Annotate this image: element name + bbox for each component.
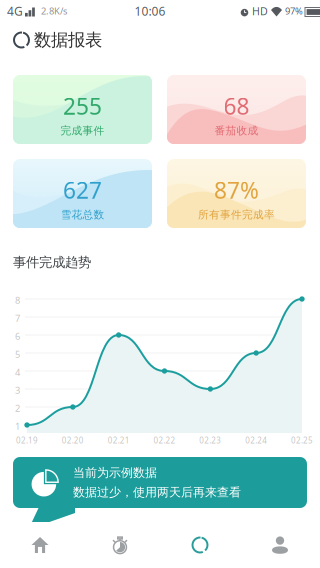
staticText: 当前为示例数据	[73, 465, 157, 480]
button[interactable]: 627	[13, 159, 152, 228]
staticText: 1	[15, 420, 20, 432]
staticText: 87%	[214, 175, 259, 205]
staticText: 4G	[7, 3, 23, 19]
staticText: 数据过少，使用两天后再来查看	[73, 485, 241, 500]
staticText: 完成事件	[60, 124, 104, 137]
button[interactable]: Home	[0, 522, 80, 568]
staticText: 68	[223, 91, 249, 121]
button[interactable]: Profile	[240, 522, 320, 568]
staticText: 2	[15, 402, 20, 414]
staticText: 4	[15, 366, 20, 378]
button[interactable]: 当前为示例数据	[13, 457, 307, 508]
staticText: 02.25	[291, 435, 313, 446]
staticText: 8	[15, 294, 20, 306]
staticText: 255	[63, 91, 102, 121]
staticText: 7	[15, 312, 20, 324]
staticText: 2.8K/s	[41, 5, 67, 17]
staticText: 6	[15, 330, 20, 342]
staticText: 02.23	[199, 435, 221, 446]
staticText: 10:06	[134, 3, 165, 19]
staticText: 番茄收成	[214, 124, 258, 137]
button[interactable]: 68	[167, 75, 306, 144]
staticText: 627	[63, 175, 102, 205]
staticText: 02.19	[16, 435, 38, 446]
staticText: 数据报表	[34, 29, 102, 51]
staticText: 所有事件完成率	[198, 208, 275, 221]
button[interactable]: Timer	[80, 522, 160, 568]
staticText: 02.20	[62, 435, 84, 446]
staticText: 02.24	[245, 435, 267, 446]
staticText: 事件完成趋势	[13, 254, 91, 270]
staticText: 97%	[285, 5, 303, 17]
button[interactable]: 255	[13, 75, 152, 144]
staticText: 雪花总数	[60, 208, 104, 221]
staticText: 02.21	[108, 435, 130, 446]
staticText: HD	[252, 4, 268, 18]
button[interactable]: Reports	[160, 522, 240, 568]
staticText: 3	[15, 384, 20, 396]
button[interactable]: 87%	[167, 159, 306, 228]
staticText: 02.22	[153, 435, 175, 446]
staticText: 5	[15, 348, 20, 360]
